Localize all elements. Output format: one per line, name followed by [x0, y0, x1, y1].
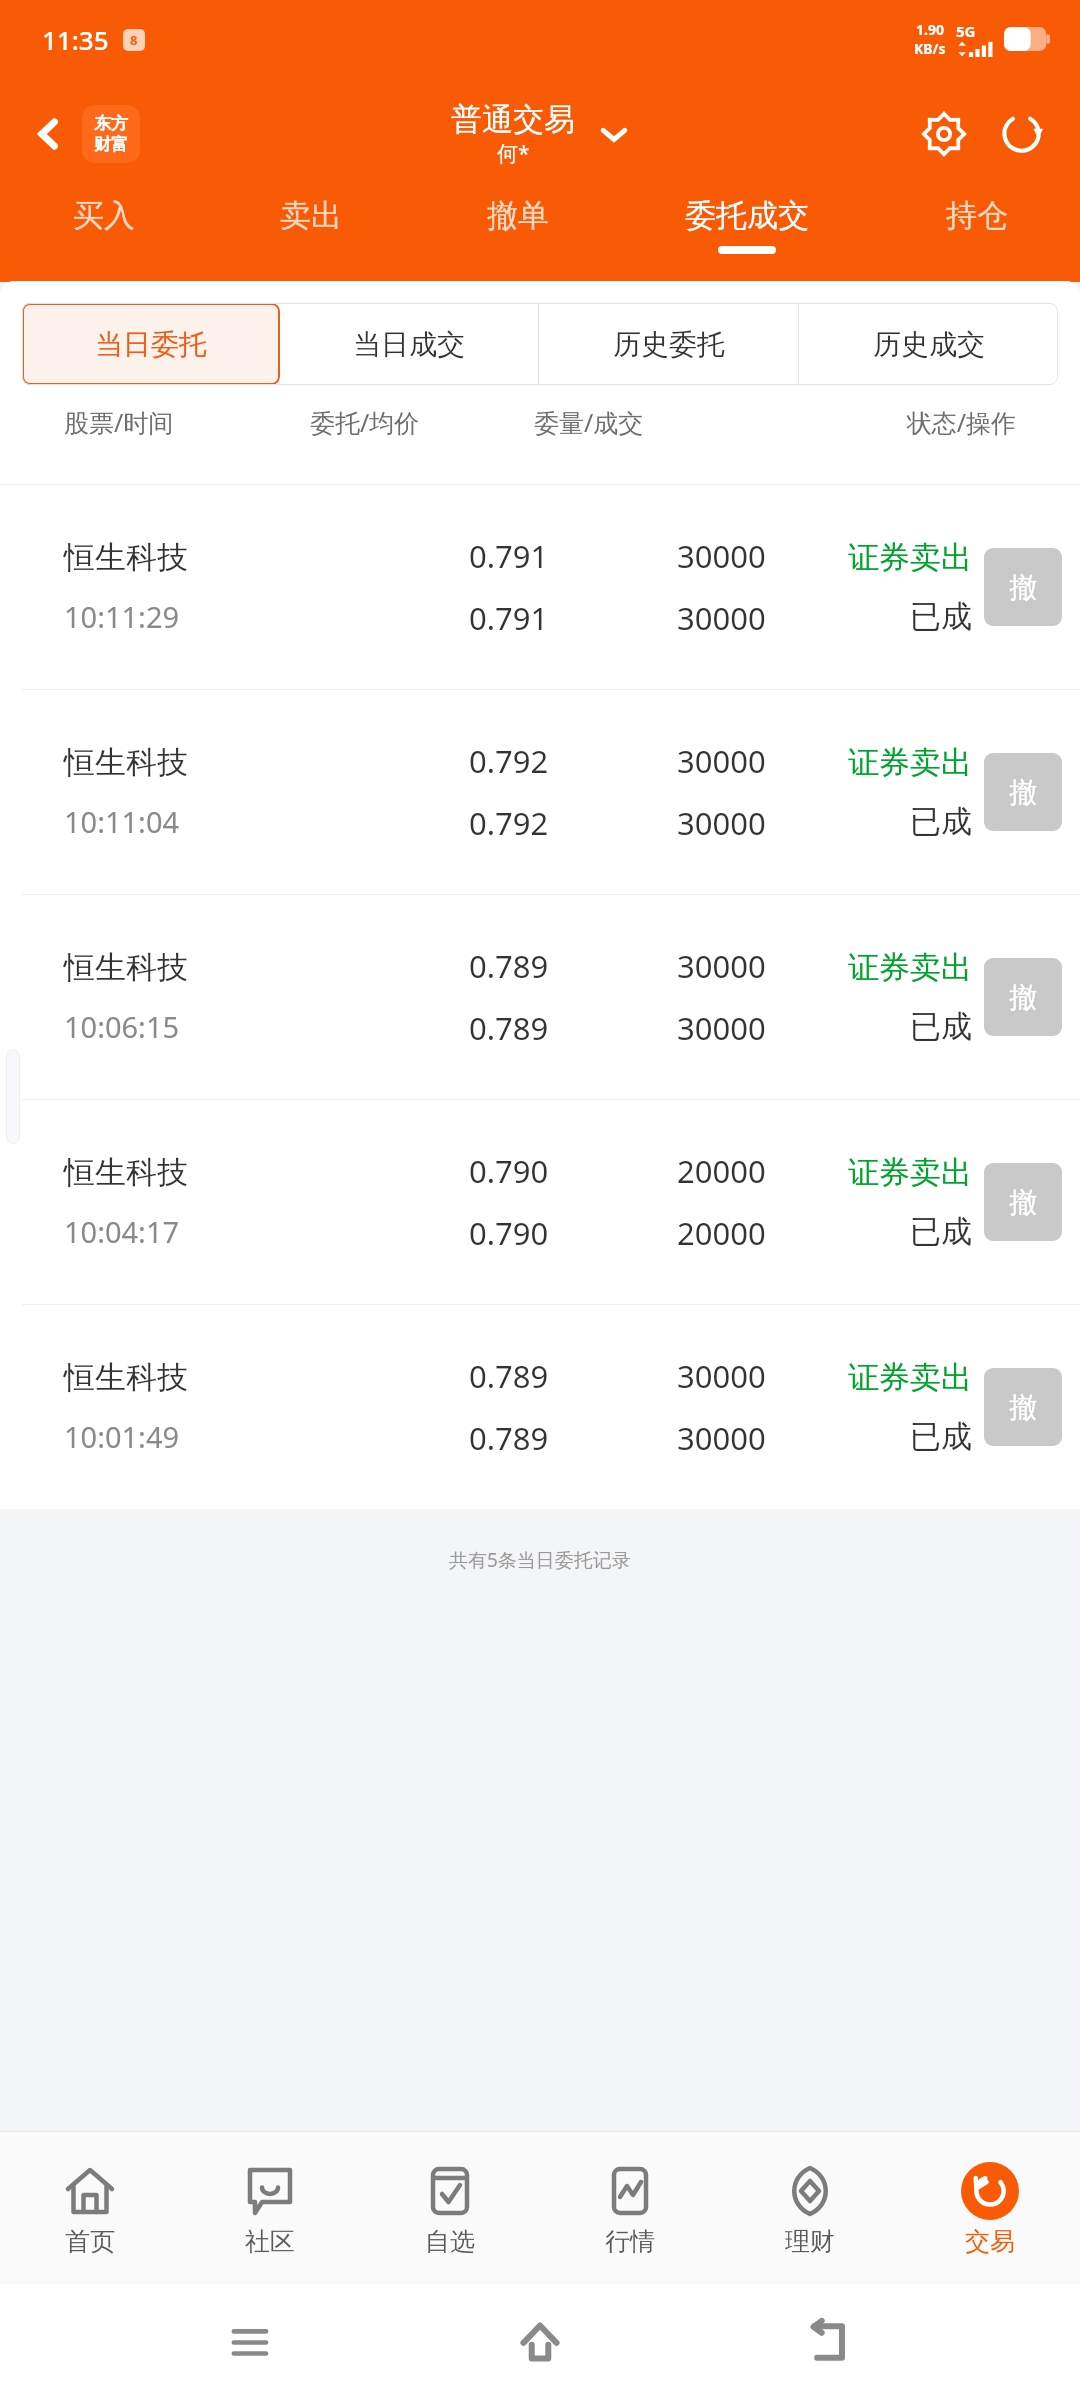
button[interactable]: 撤: [984, 1368, 1062, 1446]
button[interactable]: 恒生科技: [0, 1305, 1080, 1509]
staticText: 0.789: [469, 1355, 549, 1397]
staticText: 30000: [677, 1417, 766, 1459]
staticText: 何*: [497, 139, 530, 168]
staticText: 持仓: [946, 196, 1008, 235]
staticText: 委托/均价: [310, 405, 534, 439]
staticText: 恒生科技: [64, 1153, 188, 1192]
staticText: 证券卖出: [848, 1358, 972, 1397]
staticText: 首页: [65, 2226, 115, 2257]
staticText: 30000: [677, 945, 766, 987]
staticText: 30000: [677, 740, 766, 782]
button[interactable]: Recents: [210, 2302, 290, 2382]
staticText: 自选: [425, 2226, 475, 2257]
button[interactable]: Home: [500, 2302, 580, 2382]
button[interactable]: Back: [790, 2302, 870, 2382]
staticText: 10:06:15: [64, 1007, 180, 1046]
staticText: 已成: [910, 1417, 972, 1456]
staticText: 0.789: [469, 945, 549, 987]
button[interactable]: 委托成交: [621, 190, 873, 282]
staticText: 委量/成交: [534, 405, 758, 439]
staticText: 已成: [910, 802, 972, 841]
button[interactable]: 理财: [720, 2132, 900, 2284]
button[interactable]: 恒生科技: [0, 485, 1080, 689]
staticText: 20000: [677, 1212, 766, 1254]
staticText: 撤: [1009, 1390, 1037, 1425]
staticText: 证券卖出: [848, 1153, 972, 1192]
button[interactable]: 卖出: [207, 190, 414, 282]
button[interactable]: 历史委托: [539, 303, 798, 385]
staticText: 证券卖出: [848, 948, 972, 987]
staticText: 30000: [677, 1355, 766, 1397]
staticText: 证券卖出: [848, 538, 972, 577]
staticText: 0.790: [469, 1212, 549, 1254]
button[interactable]: 恒生科技: [0, 895, 1080, 1099]
staticText: 交易: [965, 2226, 1015, 2257]
button[interactable]: 行情: [540, 2132, 720, 2284]
staticText: 当日委托: [95, 327, 207, 362]
staticText: 已成: [910, 1212, 972, 1251]
staticText: 恒生科技: [64, 538, 188, 577]
staticText: 历史委托: [613, 327, 725, 362]
staticText: 社区: [245, 2226, 295, 2257]
button[interactable]: 交易: [900, 2132, 1080, 2284]
button[interactable]: 撤: [984, 958, 1062, 1036]
button[interactable]: 当日委托: [22, 303, 280, 385]
staticText: 5G: [956, 21, 976, 41]
button[interactable]: 持仓: [873, 190, 1080, 282]
staticText: 撤单: [487, 196, 549, 235]
button[interactable]: 当日成交: [280, 303, 538, 385]
button[interactable]: 历史成交: [799, 303, 1058, 385]
button[interactable]: 社区: [180, 2132, 360, 2284]
staticText: 30000: [677, 535, 766, 577]
staticText: 30000: [677, 1007, 766, 1049]
staticText: 20000: [677, 1150, 766, 1192]
staticText: 10:04:17: [64, 1212, 180, 1251]
staticText: 10:11:04: [64, 802, 180, 841]
staticText: 状态/操作: [758, 405, 1016, 439]
staticText: 当日成交: [353, 327, 465, 362]
staticText: 10:11:29: [64, 597, 180, 636]
staticText: 0.791: [469, 535, 549, 577]
button[interactable]: 恒生科技: [0, 1100, 1080, 1304]
staticText: 30000: [677, 802, 766, 844]
staticText: 0.789: [469, 1007, 549, 1049]
button[interactable]: Settings: [912, 102, 976, 166]
staticText: 已成: [910, 1007, 972, 1046]
button[interactable]: 普通交易: [451, 100, 629, 168]
button[interactable]: 撤: [984, 1163, 1062, 1241]
staticText: 撤: [1009, 570, 1037, 605]
staticText: 委托成交: [685, 196, 809, 235]
staticText: 理财: [785, 2226, 835, 2257]
staticText: 卖出: [280, 196, 342, 235]
staticText: 证券卖出: [848, 743, 972, 782]
staticText: 0.792: [469, 740, 549, 782]
staticText: 8: [130, 31, 138, 49]
staticText: 行情: [605, 2226, 655, 2257]
staticText: 股票/时间: [64, 405, 310, 439]
button[interactable]: 撤单: [414, 190, 621, 282]
staticText: 历史成交: [873, 327, 985, 362]
staticText: 撤: [1009, 775, 1037, 810]
button[interactable]: Back: [22, 105, 140, 163]
staticText: 恒生科技: [64, 1358, 188, 1397]
staticText: 0.790: [469, 1150, 549, 1192]
staticText: 已成: [910, 597, 972, 636]
button[interactable]: 自选: [360, 2132, 540, 2284]
staticText: 东方: [94, 113, 128, 134]
staticText: 0.789: [469, 1417, 549, 1459]
staticText: 0.792: [469, 802, 549, 844]
staticText: 恒生科技: [64, 743, 188, 782]
staticText: 共有5条当日委托记录: [449, 1547, 631, 1573]
staticText: 普通交易: [451, 100, 575, 139]
button[interactable]: 撤: [984, 753, 1062, 831]
button[interactable]: Refresh: [990, 102, 1054, 166]
staticText: 30000: [677, 597, 766, 639]
button[interactable]: 恒生科技: [0, 690, 1080, 894]
staticText: 撤: [1009, 1185, 1037, 1220]
button[interactable]: 首页: [0, 2132, 180, 2284]
staticText: 11:35: [42, 22, 109, 57]
button[interactable]: 撤: [984, 548, 1062, 626]
staticText: 10:01:49: [64, 1417, 180, 1456]
staticText: 撤: [1009, 980, 1037, 1015]
button[interactable]: 买入: [0, 190, 207, 282]
